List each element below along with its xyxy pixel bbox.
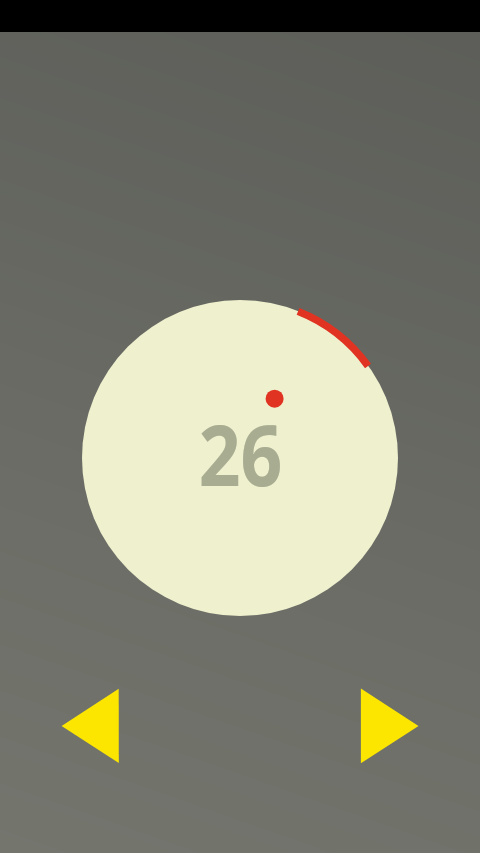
staticText: 26 [198, 396, 283, 510]
button[interactable]: Decrease timer [50, 677, 132, 775]
button[interactable]: 26 [82, 300, 398, 616]
button[interactable]: Increase timer [349, 677, 431, 775]
